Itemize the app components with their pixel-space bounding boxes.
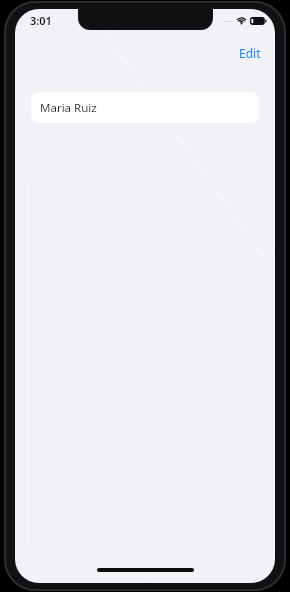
button[interactable]: Maria Ruiz bbox=[31, 92, 259, 123]
button[interactable]: Edit bbox=[233, 42, 267, 64]
other: Battery bbox=[250, 17, 267, 25]
staticText: Maria Ruiz bbox=[40, 100, 97, 116]
staticText: Edit bbox=[239, 45, 261, 61]
staticText: 3:01 bbox=[30, 13, 52, 28]
